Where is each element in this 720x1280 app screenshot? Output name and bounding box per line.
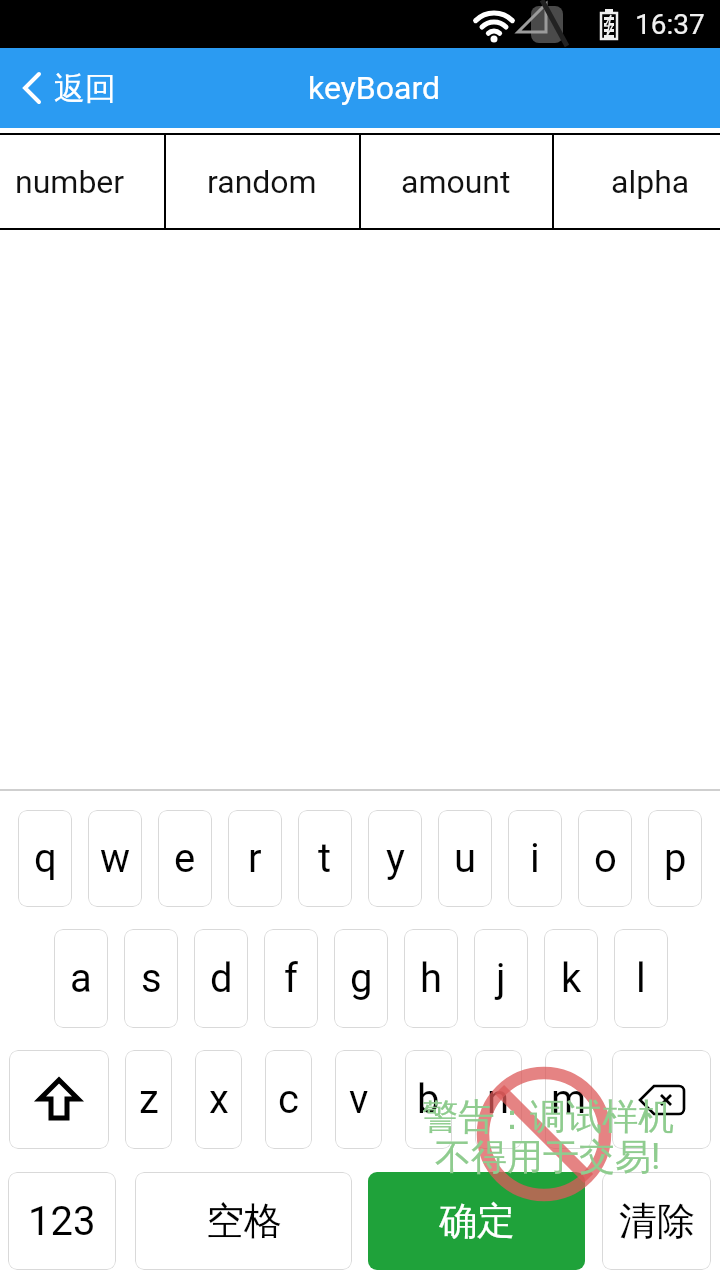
button[interactable]: c <box>265 1050 312 1149</box>
staticText: 确定 <box>439 1197 515 1245</box>
staticText: v <box>349 1076 369 1123</box>
button[interactable]: s <box>124 929 178 1028</box>
staticText: k <box>561 955 582 1002</box>
staticText: number <box>15 163 125 201</box>
button[interactable]: n <box>475 1050 522 1149</box>
button[interactable]: m <box>545 1050 592 1149</box>
button[interactable]: 清除 <box>602 1172 711 1270</box>
button[interactable]: u <box>438 810 492 907</box>
staticText: 16:37 <box>635 8 705 41</box>
staticText: q <box>34 835 57 882</box>
button[interactable]: d <box>194 929 248 1028</box>
staticText: x <box>209 1076 229 1123</box>
staticText: d <box>210 955 233 1002</box>
button[interactable]: l <box>614 929 668 1028</box>
button[interactable]: amount <box>359 133 553 230</box>
staticText: 123 <box>28 1198 96 1245</box>
button[interactable]: v <box>335 1050 382 1149</box>
staticText: w <box>100 835 131 882</box>
button[interactable]: 确定 <box>368 1172 585 1270</box>
staticText: b <box>417 1076 440 1123</box>
button[interactable]: h <box>404 929 458 1028</box>
button[interactable]: t <box>298 810 352 907</box>
button[interactable]: k <box>544 929 598 1028</box>
button[interactable]: 123 <box>8 1172 116 1270</box>
staticText: random <box>207 163 317 201</box>
button[interactable]: q <box>18 810 72 907</box>
button[interactable]: f <box>264 929 318 1028</box>
staticText: amount <box>401 163 511 201</box>
button[interactable] <box>612 1050 711 1149</box>
staticText: z <box>139 1076 159 1123</box>
staticText: h <box>420 955 443 1002</box>
staticText: keyBoard <box>308 69 440 107</box>
button[interactable]: 返回 <box>20 48 116 128</box>
staticText: o <box>594 835 617 882</box>
button[interactable]: j <box>474 929 528 1028</box>
staticText: c <box>278 1076 299 1123</box>
staticText: m <box>551 1076 587 1123</box>
staticText: 警告：调试样机 <box>422 1094 674 1139</box>
staticText: s <box>141 955 162 1002</box>
button[interactable]: random <box>165 133 359 230</box>
button[interactable]: g <box>334 929 388 1028</box>
staticText: a <box>70 955 92 1002</box>
staticText: alpha <box>611 163 690 201</box>
button[interactable]: x <box>195 1050 242 1149</box>
button[interactable]: o <box>578 810 632 907</box>
button[interactable]: z <box>125 1050 172 1149</box>
staticText: 返回 <box>54 69 116 108</box>
button[interactable]: a <box>54 929 108 1028</box>
staticText: e <box>174 835 196 882</box>
staticText: u <box>454 835 477 882</box>
staticText: g <box>350 955 373 1002</box>
button[interactable]: 空格 <box>135 1172 352 1270</box>
button[interactable]: r <box>228 810 282 907</box>
staticText: f <box>284 955 298 1002</box>
staticText: n <box>487 1076 510 1123</box>
staticText: l <box>636 955 646 1002</box>
staticText: 清除 <box>619 1197 695 1245</box>
staticText: p <box>664 835 687 882</box>
staticText: 不得用于交易! <box>435 1134 661 1179</box>
button[interactable]: i <box>508 810 562 907</box>
button[interactable]: b <box>405 1050 452 1149</box>
button[interactable]: w <box>88 810 142 907</box>
staticText: r <box>248 835 262 882</box>
button[interactable]: p <box>648 810 702 907</box>
staticText: y <box>386 835 405 882</box>
staticText: i <box>530 835 540 882</box>
button[interactable] <box>9 1050 109 1149</box>
staticText: t <box>318 835 332 882</box>
button[interactable]: y <box>368 810 422 907</box>
button[interactable]: e <box>158 810 212 907</box>
staticText: j <box>496 955 506 1002</box>
button[interactable]: number <box>0 133 167 230</box>
button[interactable]: alpha <box>553 133 720 230</box>
staticText: 空格 <box>206 1197 282 1245</box>
